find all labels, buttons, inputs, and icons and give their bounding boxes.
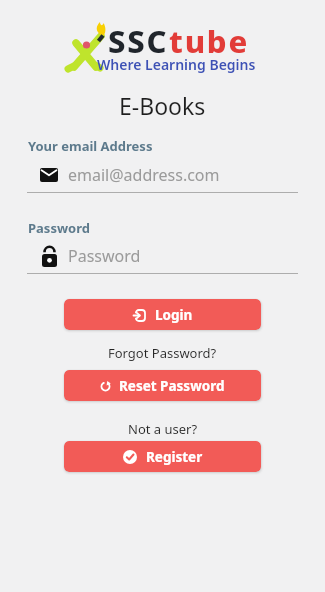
staticText: tube — [169, 20, 250, 62]
staticText: Reset Password — [119, 377, 225, 395]
staticText: Where Learning Begins — [97, 55, 256, 74]
button[interactable]: Login — [64, 299, 261, 330]
staticText: Login — [155, 306, 193, 324]
button[interactable]: Forgot Password? — [108, 344, 217, 362]
staticText: Your email Address — [28, 137, 153, 155]
staticText: Password — [68, 245, 141, 267]
button[interactable]: Reset Password — [64, 370, 261, 401]
staticText: Password — [28, 219, 90, 237]
button[interactable]: Not a user? — [128, 420, 198, 438]
staticText: email@address.com — [68, 164, 220, 186]
staticText: Register — [146, 448, 203, 466]
button[interactable]: email@address.com — [40, 160, 280, 190]
button[interactable]: Register — [64, 441, 261, 472]
staticText: SSC — [108, 20, 169, 62]
button[interactable]: Password — [42, 241, 280, 271]
staticText: E-Books — [119, 90, 206, 121]
